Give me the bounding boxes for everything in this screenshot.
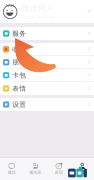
staticText: 我 xyxy=(80,170,84,175)
button[interactable]: 服务 xyxy=(0,27,94,40)
button[interactable]: 微信 xyxy=(0,158,23,180)
staticText: 微信用户 xyxy=(22,3,54,13)
button[interactable]: 表情 xyxy=(0,82,94,95)
button[interactable]: 卡包 xyxy=(0,69,94,82)
button[interactable]: 收藏 xyxy=(0,43,94,56)
button[interactable]: 我 xyxy=(70,158,94,180)
button[interactable]: 发现 xyxy=(47,158,70,180)
staticText: 设置 xyxy=(12,100,26,109)
staticText: 表情 xyxy=(12,84,26,93)
staticText: 发现 xyxy=(55,170,63,175)
button[interactable]: 通讯录 xyxy=(23,158,47,180)
button[interactable]: 朋友圈 xyxy=(0,56,94,69)
staticText: 微信 xyxy=(8,170,16,175)
staticText: 收藏 xyxy=(12,45,26,53)
staticText: 卡包 xyxy=(12,71,26,79)
staticText: 服务 xyxy=(12,29,26,38)
staticText: 通讯录 xyxy=(29,170,41,175)
staticText: 朋友圈 xyxy=(12,58,33,66)
button[interactable]: 设置 xyxy=(0,98,94,111)
button[interactable]: 微信用户 xyxy=(0,0,94,23)
